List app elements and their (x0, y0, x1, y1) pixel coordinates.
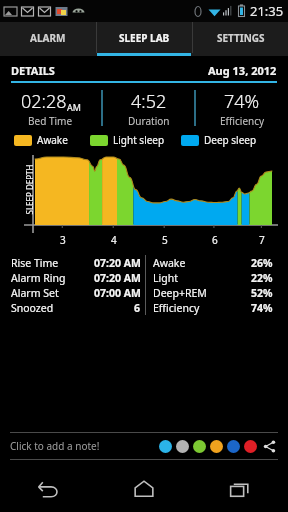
staticText: Rise Time (11, 256, 59, 270)
button[interactable]: Share (261, 438, 278, 455)
staticText: 07:00 AM (94, 286, 141, 300)
button[interactable]: Efficiency (153, 300, 277, 315)
button[interactable]: Tag colour (242, 438, 259, 455)
button[interactable]: Rise Time (11, 255, 145, 270)
staticText: Efficiency (220, 114, 265, 128)
button[interactable]: 74% (196, 87, 288, 129)
staticText: Deep+REM (153, 286, 207, 300)
staticText: 6 (212, 233, 218, 247)
button[interactable]: Tag colour (208, 438, 225, 455)
staticText: Snoozed (11, 301, 54, 315)
staticText: 4 (111, 233, 117, 247)
staticText: 7 (259, 233, 265, 247)
button[interactable]: Home (96, 466, 192, 512)
staticText: Light sleep (113, 133, 165, 147)
staticText: 3 (60, 233, 66, 247)
staticText: 07:20 AM (94, 256, 141, 270)
button[interactable]: Deep+REM (153, 285, 277, 300)
staticText: ALARM (30, 31, 66, 45)
button[interactable]: Light (153, 270, 277, 285)
staticText: Alarm Set (11, 286, 59, 300)
button[interactable]: Alarm Ring (11, 270, 145, 285)
button[interactable]: Tag colour (174, 438, 191, 455)
button[interactable]: Tag colour (225, 438, 242, 455)
button[interactable]: Awake (153, 255, 277, 270)
staticText: 22% (251, 271, 273, 285)
button[interactable]: 02:28 (0, 87, 101, 129)
staticText: Duration (128, 114, 170, 128)
staticText: Awake (37, 133, 68, 147)
staticText: Efficiency (153, 301, 200, 315)
staticText: 4:52 (131, 89, 167, 114)
button[interactable]: SETTINGS (193, 22, 288, 53)
staticText: 07:20 AM (94, 271, 141, 285)
staticText: Alarm Ring (11, 271, 66, 285)
button[interactable]: Recent apps (192, 466, 288, 512)
staticText: Light (153, 271, 178, 285)
staticText: 5 (162, 233, 168, 247)
button[interactable]: Click to add a note! (10, 433, 157, 459)
staticText: Deep sleep (204, 133, 257, 147)
staticText: 02:28 (21, 89, 67, 114)
button[interactable]: Tag colour (191, 438, 208, 455)
button[interactable]: Back (0, 466, 96, 512)
staticText: SLEEP LAB (119, 31, 170, 45)
staticText: 74% (251, 301, 273, 315)
staticText: AM (67, 101, 81, 113)
staticText: 52% (251, 286, 273, 300)
button[interactable]: Snoozed (11, 300, 145, 315)
staticText: DETAILS (11, 63, 55, 78)
staticText: 21:35 (250, 2, 284, 20)
staticText: Awake (153, 256, 186, 270)
staticText: SETTINGS (217, 31, 265, 45)
staticText: 6 (134, 301, 141, 315)
staticText: Click to add a note! (10, 439, 100, 453)
button[interactable]: Tag colour (157, 438, 174, 455)
staticText: Aug 13, 2012 (208, 63, 277, 78)
staticText: 26% (251, 256, 273, 270)
staticText: 74% (224, 89, 260, 114)
button[interactable]: ALARM (0, 22, 96, 53)
button[interactable]: SLEEP LAB (97, 22, 192, 53)
staticText: SLEEP DEPTH (23, 164, 34, 214)
button[interactable]: 4:52 (103, 87, 194, 129)
button[interactable]: Alarm Set (11, 285, 145, 300)
staticText: Bed Time (28, 114, 73, 128)
